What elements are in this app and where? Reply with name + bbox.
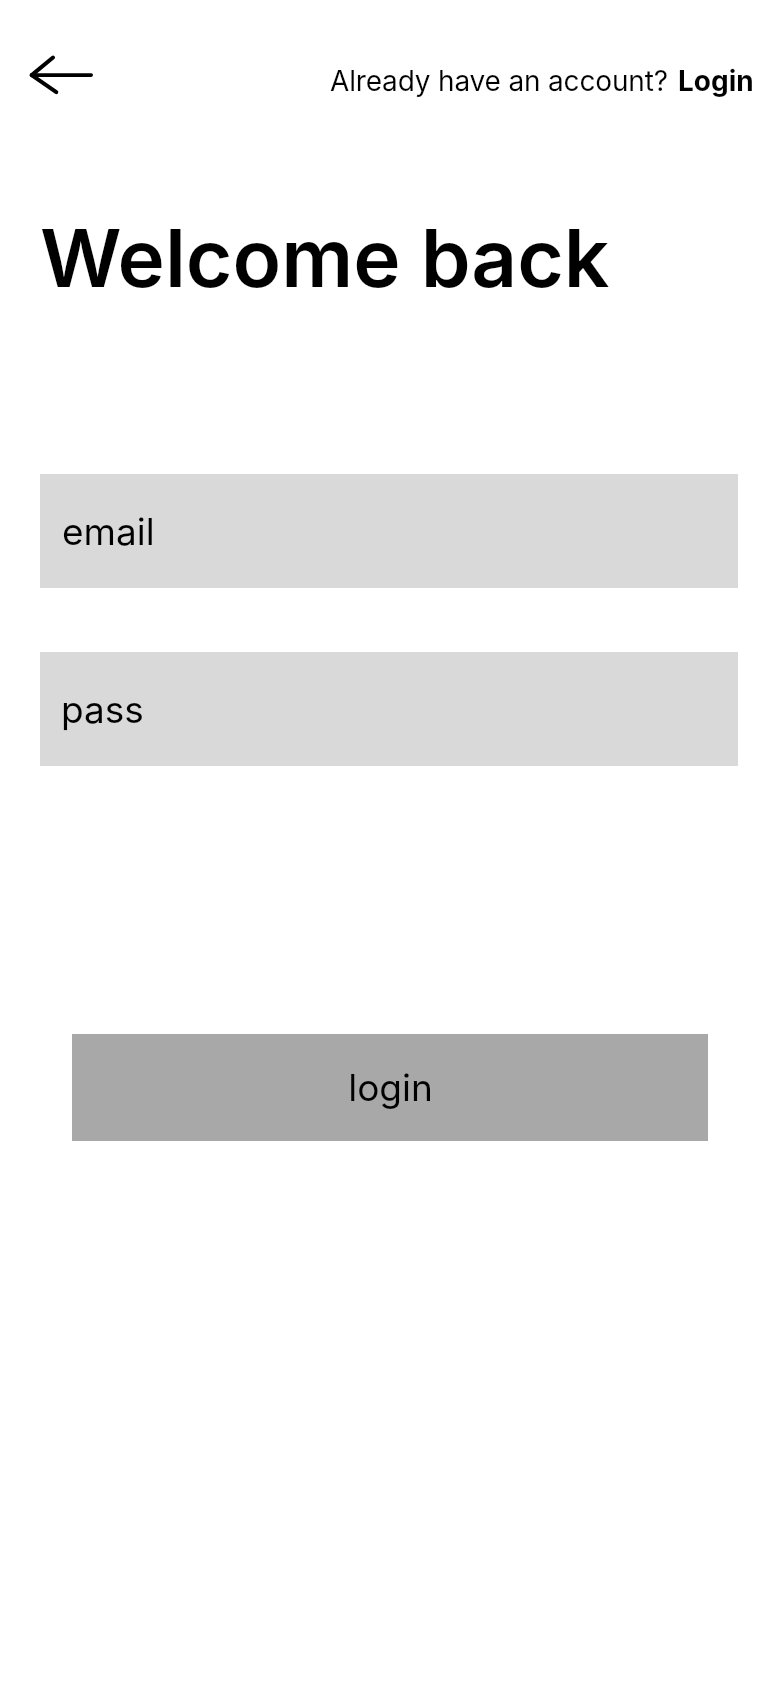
staticText: Already have an account? xyxy=(330,64,668,98)
button[interactable]: Already have an account? xyxy=(310,52,770,110)
button[interactable]: email xyxy=(40,474,738,588)
staticText: Welcome back xyxy=(40,209,610,306)
staticText: login xyxy=(348,1065,433,1110)
staticText: pass xyxy=(61,687,144,732)
staticText: Login xyxy=(678,64,754,98)
staticText: email xyxy=(62,509,155,554)
button[interactable]: login xyxy=(72,1034,708,1141)
button[interactable]: pass xyxy=(40,652,738,766)
button[interactable]: Back xyxy=(8,33,116,117)
